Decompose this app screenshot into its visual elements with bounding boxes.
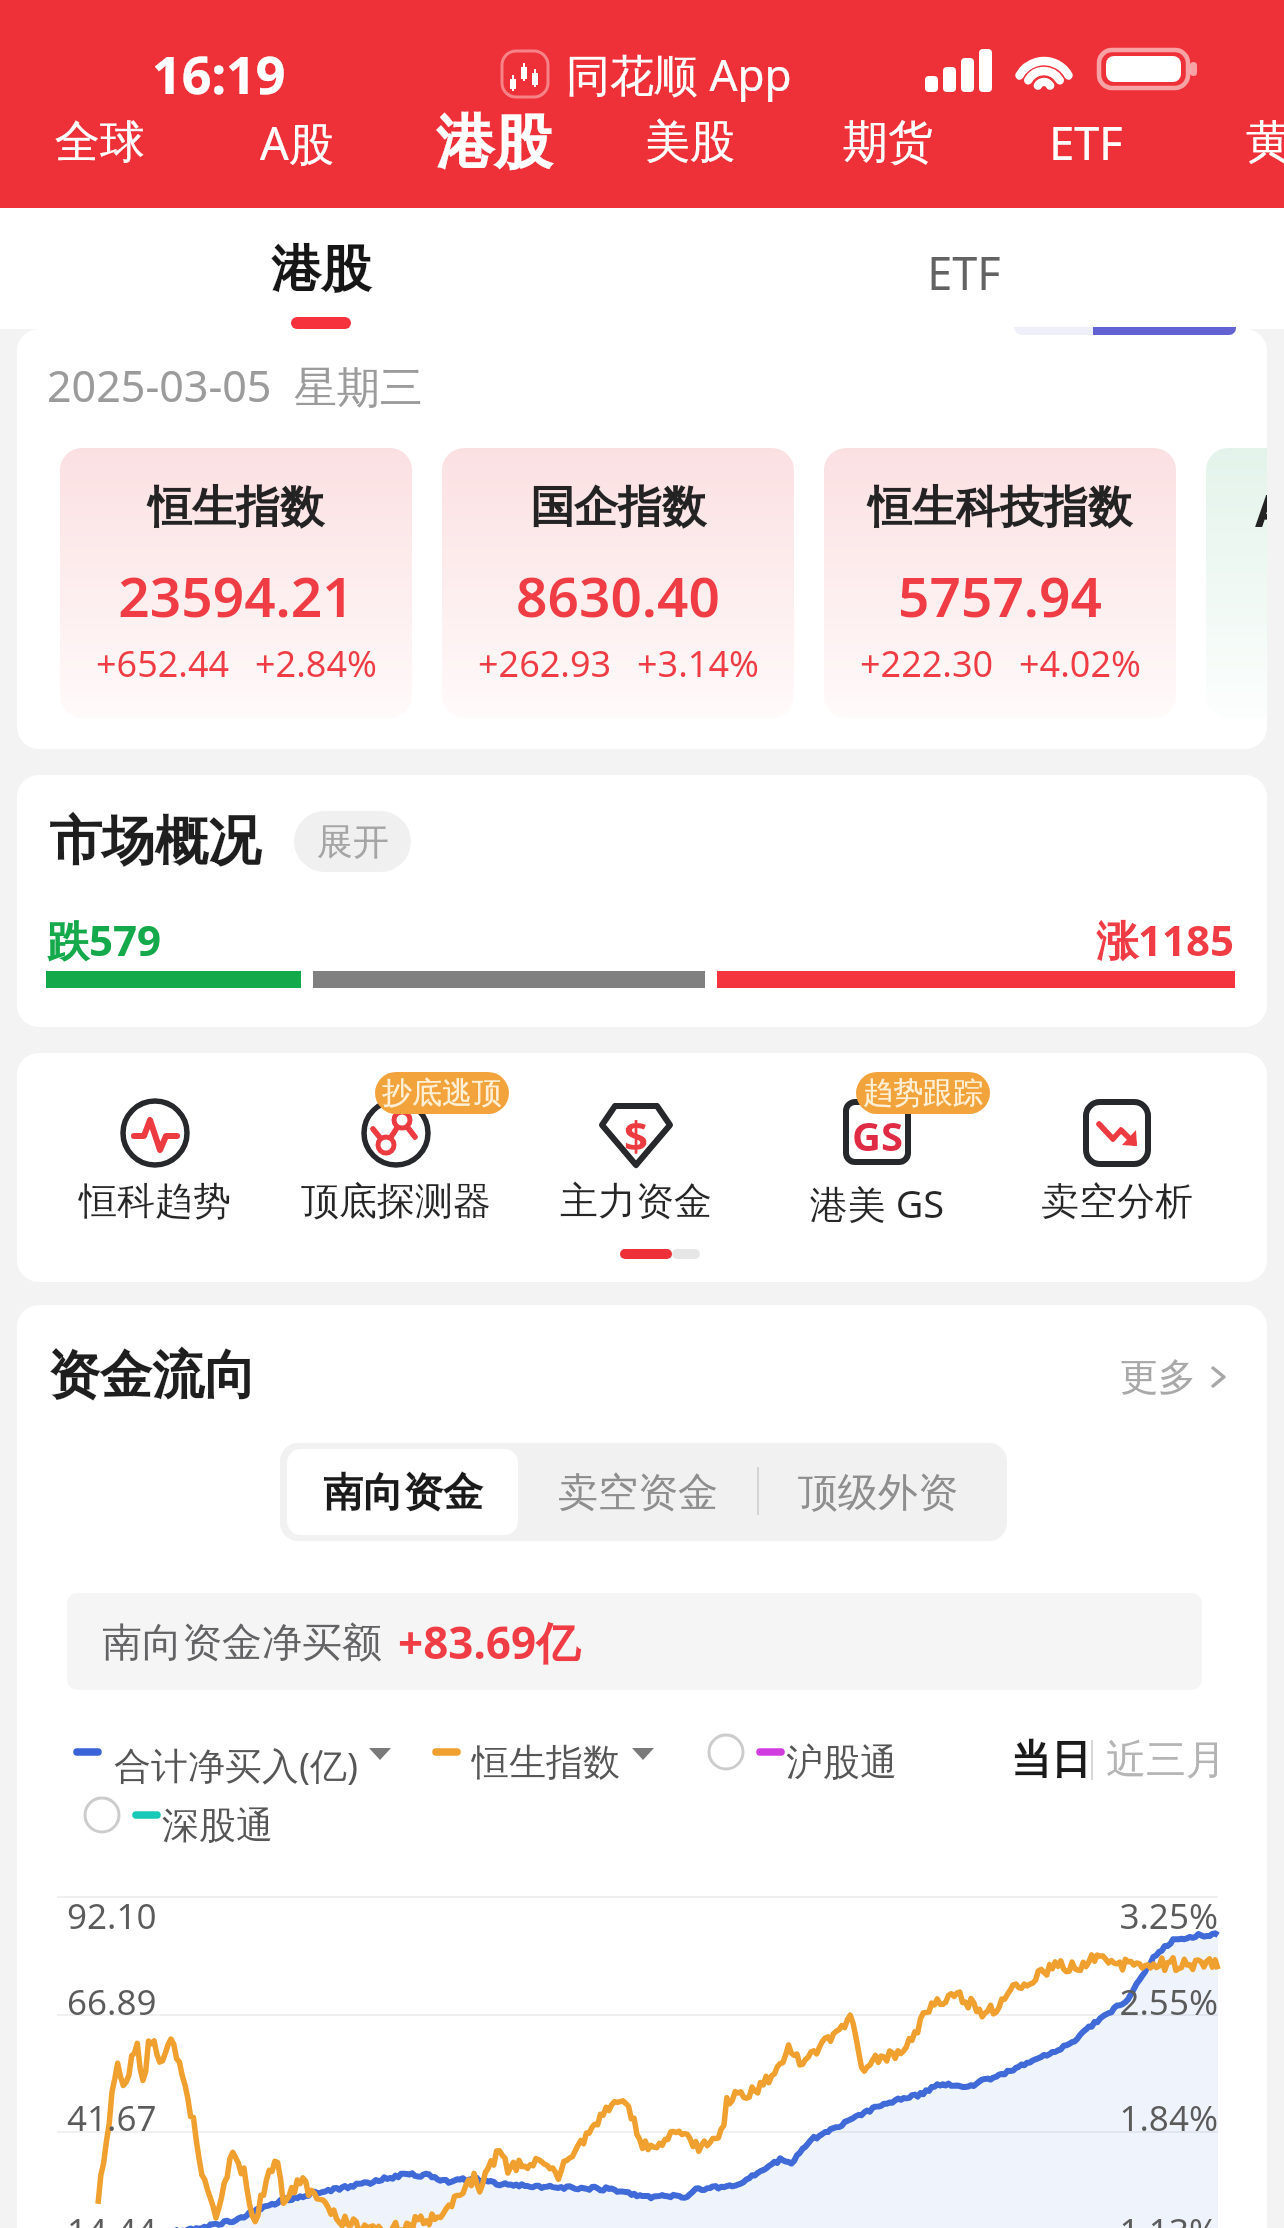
other: 港美 GS	[842, 1098, 912, 1168]
staticText: 全球	[55, 114, 145, 171]
button[interactable]: 恒生指数	[427, 1725, 662, 1779]
staticText: 美股	[645, 114, 735, 171]
other: Battery	[1097, 46, 1198, 92]
button[interactable]: 国企指数	[442, 448, 794, 718]
staticText: 8630.40	[442, 558, 794, 633]
staticText: +262.93	[478, 639, 612, 688]
button[interactable]: 港股	[241, 208, 401, 329]
button[interactable]: 顶底探测器	[286, 1053, 506, 1233]
staticText: 期货	[843, 114, 933, 171]
staticText: 资金流向	[48, 1343, 256, 1409]
staticText: GS	[852, 1108, 903, 1162]
staticText: 更多	[1120, 1353, 1196, 1401]
other: 卖空分析	[1082, 1098, 1152, 1168]
staticText: +3.14%	[637, 639, 759, 688]
staticText: 主力资金	[526, 1177, 746, 1225]
staticText: $	[624, 1106, 649, 1163]
button[interactable]: 合计净买入(亿)	[67, 1725, 407, 1779]
button[interactable]: 黄	[1183, 104, 1284, 180]
staticText: 南向资金净买额	[102, 1617, 382, 1667]
button[interactable]: 顶级外资	[773, 1449, 983, 1535]
staticText: 2025-03-05 星期三	[47, 356, 423, 415]
staticText: 涨1185	[889, 911, 1234, 968]
staticText: 深股通	[162, 1802, 273, 1849]
other: 恒科趋势	[120, 1098, 190, 1168]
button[interactable]: A股	[212, 104, 382, 180]
staticText: 41.67	[67, 2094, 157, 2142]
staticText: 1.84%	[917, 2094, 1218, 2142]
button[interactable]: 恒生科技指数	[824, 448, 1176, 718]
staticText: ETF	[884, 242, 1044, 303]
staticText: 66.89	[67, 1978, 157, 2026]
staticText: 合计净买入(亿)	[114, 1739, 359, 1790]
staticText: 5757.94	[824, 558, 1176, 633]
staticText: +83.69亿	[398, 1612, 581, 1672]
other: 同花顺 App	[500, 49, 550, 99]
staticText: 当日	[1011, 1734, 1091, 1784]
staticText: +652.44	[96, 639, 230, 688]
staticText: 展开	[317, 819, 389, 864]
staticText: 抄底逃顶	[382, 1074, 502, 1112]
staticText: 港股	[436, 106, 552, 179]
staticText: 16:19	[152, 38, 286, 109]
staticText: 港股	[241, 238, 401, 301]
staticText: +4.02%	[1019, 639, 1141, 688]
staticText: 92.10	[67, 1892, 157, 1940]
staticText: 卖空资金	[558, 1467, 718, 1517]
button[interactable]: 港股	[409, 104, 579, 180]
staticText: 1.13%	[917, 2207, 1218, 2228]
button[interactable]: 全球	[15, 104, 185, 180]
button[interactable]: 沪股通	[703, 1725, 907, 1779]
staticText: 恒科趋势	[45, 1177, 265, 1225]
button[interactable]: 卖空分析	[1007, 1053, 1227, 1233]
button[interactable]: 主力资金	[526, 1053, 746, 1233]
staticText: 沪股通	[786, 1739, 897, 1786]
button[interactable]: 同花顺 App	[500, 44, 792, 104]
staticText: 顶级外资	[798, 1467, 958, 1517]
button[interactable]: 更多	[1120, 1353, 1232, 1401]
button[interactable]: 展开	[294, 811, 411, 872]
staticText: 恒生指数	[60, 480, 412, 535]
button[interactable]: 期货	[803, 104, 973, 180]
button[interactable]: ETF	[1001, 104, 1171, 180]
button[interactable]: ETF	[884, 208, 1044, 329]
button[interactable]: 深股通	[79, 1788, 283, 1842]
other: 主力资金	[598, 1098, 674, 1168]
button[interactable]: 当日	[1011, 1734, 1091, 1784]
button[interactable]: 恒生指数	[60, 448, 412, 718]
staticText: +2.84%	[255, 639, 377, 688]
staticText: 港美 GS	[767, 1177, 987, 1229]
staticText: 同花顺 App	[566, 44, 792, 104]
staticText: 23594.21	[60, 558, 412, 633]
staticText: 3.25%	[917, 1892, 1218, 1940]
staticText: ETF	[1049, 112, 1123, 173]
staticText: +222.30	[860, 639, 994, 688]
staticText: 恒生指数	[472, 1739, 620, 1786]
other: Cellular signal	[925, 46, 993, 92]
staticText: 近三月	[1106, 1734, 1226, 1784]
other: Wi-Fi	[1015, 46, 1073, 92]
button[interactable]: 恒科趋势	[45, 1053, 265, 1233]
button[interactable]: 近三月	[1106, 1734, 1226, 1784]
button[interactable]: 南向资金	[287, 1449, 518, 1535]
button[interactable]: 卖空资金	[533, 1449, 743, 1535]
staticText: 市场概况	[49, 808, 261, 875]
staticText: 跌579	[47, 911, 162, 968]
staticText: A股	[260, 112, 334, 173]
button[interactable]: 美股	[605, 104, 775, 180]
staticText: 恒生科技指数	[824, 480, 1176, 535]
button[interactable]: A	[1206, 448, 1267, 718]
staticText: 14.44	[67, 2207, 157, 2228]
staticText: 趋势跟踪	[863, 1074, 983, 1112]
staticText: 国企指数	[442, 480, 794, 535]
staticText: A	[1255, 480, 1267, 540]
staticText: 顶底探测器	[286, 1177, 506, 1225]
staticText: 南向资金	[323, 1467, 483, 1517]
button[interactable]: 港美 GS	[767, 1053, 987, 1233]
other: 顶底探测器	[361, 1098, 431, 1168]
staticText: 2.55%	[917, 1978, 1218, 2026]
staticText: 卖空分析	[1007, 1177, 1227, 1225]
staticText: 黄	[1246, 114, 1284, 171]
